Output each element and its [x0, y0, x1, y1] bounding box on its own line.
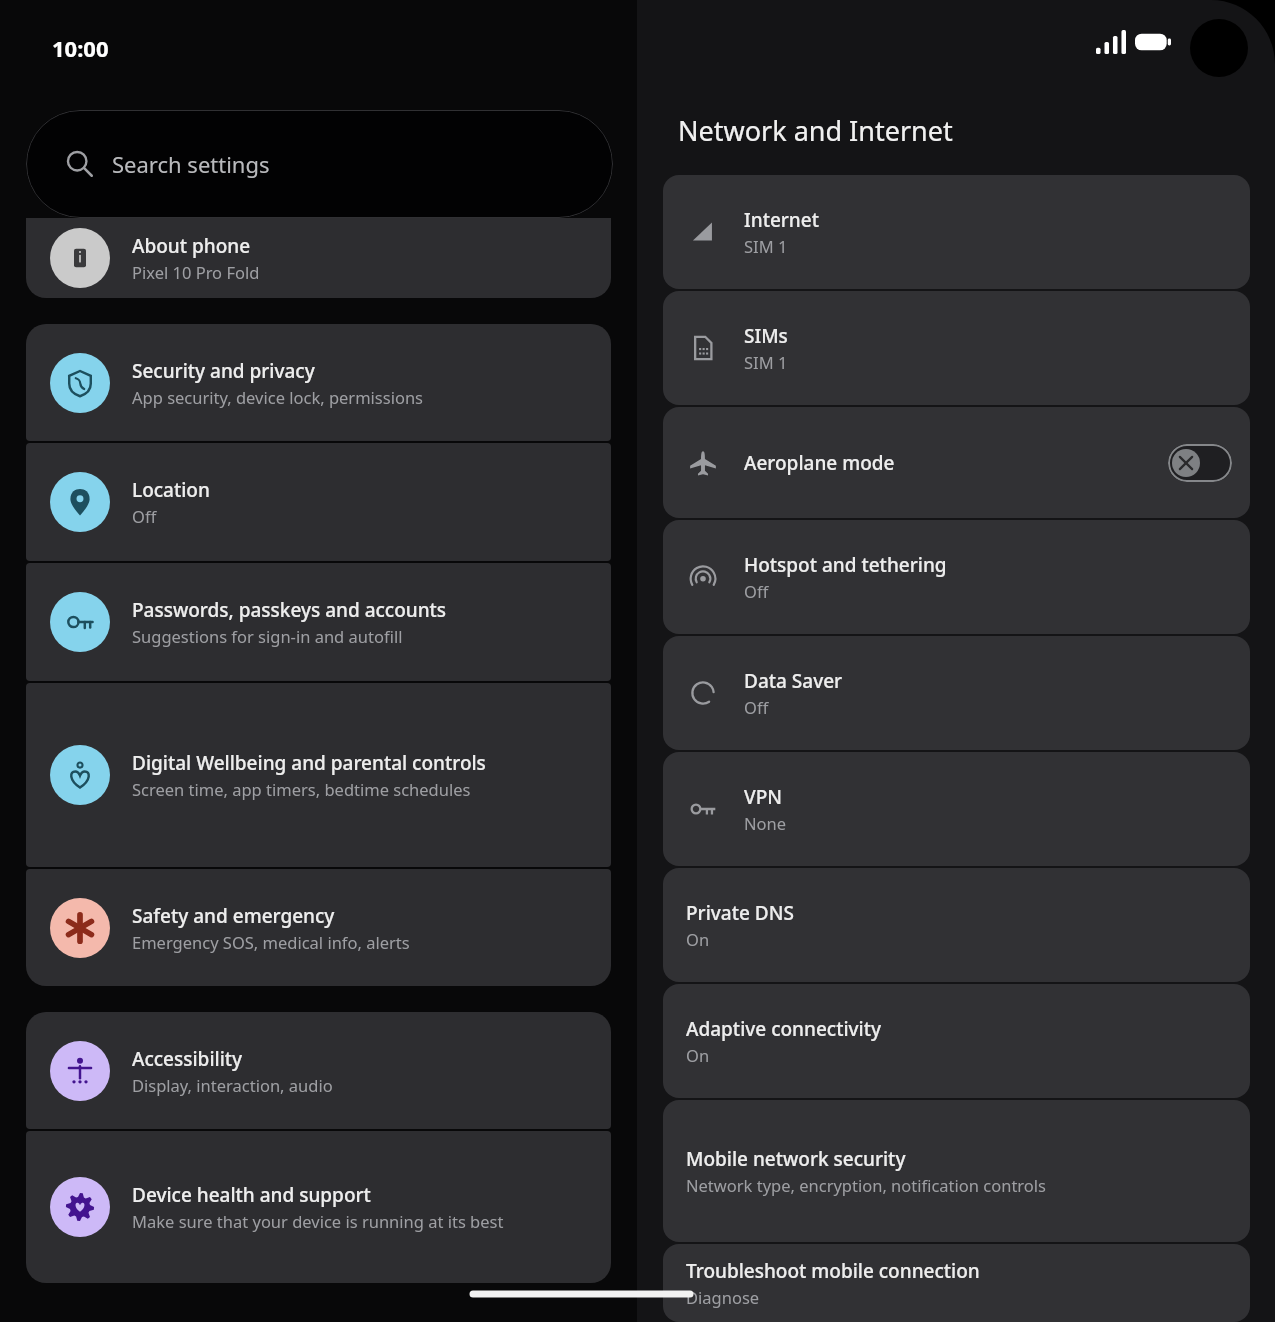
staticText: Passwords, passkeys and accounts: [132, 597, 447, 623]
staticText: Display, interaction, audio: [132, 1074, 333, 1096]
staticText: Pixel 10 Pro Fold: [132, 261, 260, 283]
staticText: Network type, encryption, notification c…: [686, 1174, 1046, 1196]
staticText: Off: [744, 580, 769, 602]
staticText: Safety and emergency: [132, 903, 335, 929]
staticText: VPN: [744, 784, 783, 810]
staticText: Accessibility: [132, 1046, 243, 1072]
staticText: Internet: [744, 207, 819, 233]
button[interactable]: Search settings: [26, 110, 613, 218]
staticText: Diagnose: [686, 1286, 760, 1308]
button[interactable]: Passwords, passkeys and accounts: [26, 563, 611, 681]
staticText: Suggestions for sign-in and autofill: [132, 625, 403, 647]
button[interactable]: Aeroplane mode: [663, 407, 1250, 518]
staticText: Mobile network security: [686, 1146, 906, 1172]
button[interactable]: VPN: [663, 752, 1250, 866]
button[interactable]: Device health and support: [26, 1131, 611, 1283]
staticText: On: [686, 1044, 710, 1066]
staticText: SIM 1: [744, 351, 788, 373]
staticText: Private DNS: [686, 900, 794, 926]
staticText: Aeroplane mode: [744, 450, 895, 476]
button[interactable]: Troubleshoot mobile connection: [663, 1244, 1250, 1322]
button[interactable]: Hotspot and tethering: [663, 520, 1250, 634]
staticText: Network and Internet: [678, 112, 953, 149]
button[interactable]: Adaptive connectivity: [663, 984, 1250, 1098]
staticText: SIM 1: [744, 235, 788, 257]
staticText: Security and privacy: [132, 358, 315, 384]
staticText: App security, device lock, permissions: [132, 386, 424, 408]
button[interactable]: SIMs: [663, 291, 1250, 405]
staticText: Emergency SOS, medical info, alerts: [132, 931, 410, 953]
button[interactable]: Accessibility: [26, 1012, 611, 1129]
staticText: Hotspot and tethering: [744, 552, 947, 578]
staticText: Off: [744, 696, 769, 718]
staticText: None: [744, 812, 787, 834]
button[interactable]: Security and privacy: [26, 324, 611, 441]
button[interactable]: Mobile network security: [663, 1100, 1250, 1242]
button[interactable]: Private DNS: [663, 868, 1250, 982]
staticText: Device health and support: [132, 1182, 371, 1208]
button[interactable]: Data Saver: [663, 636, 1250, 750]
staticText: About phone: [132, 233, 251, 259]
staticText: 10:00: [52, 33, 109, 63]
staticText: Location: [132, 477, 210, 503]
staticText: Data Saver: [744, 668, 843, 694]
button[interactable]: Location: [26, 443, 611, 561]
staticText: Adaptive connectivity: [686, 1016, 881, 1042]
button[interactable]: Digital Wellbeing and parental controls: [26, 683, 611, 867]
staticText: Digital Wellbeing and parental controls: [132, 750, 486, 776]
staticText: SIMs: [744, 323, 788, 349]
staticText: On: [686, 928, 710, 950]
button[interactable]: Aeroplane mode toggle, off: [1168, 444, 1232, 482]
staticText: Search settings: [112, 149, 270, 179]
button[interactable]: Safety and emergency: [26, 869, 611, 986]
staticText: Troubleshoot mobile connection: [686, 1258, 980, 1284]
staticText: Make sure that your device is running at…: [132, 1210, 504, 1232]
staticText: Off: [132, 505, 157, 527]
button[interactable]: Internet: [663, 175, 1250, 289]
button[interactable]: About phone: [26, 218, 611, 298]
staticText: Screen time, app timers, bedtime schedul…: [132, 778, 471, 800]
